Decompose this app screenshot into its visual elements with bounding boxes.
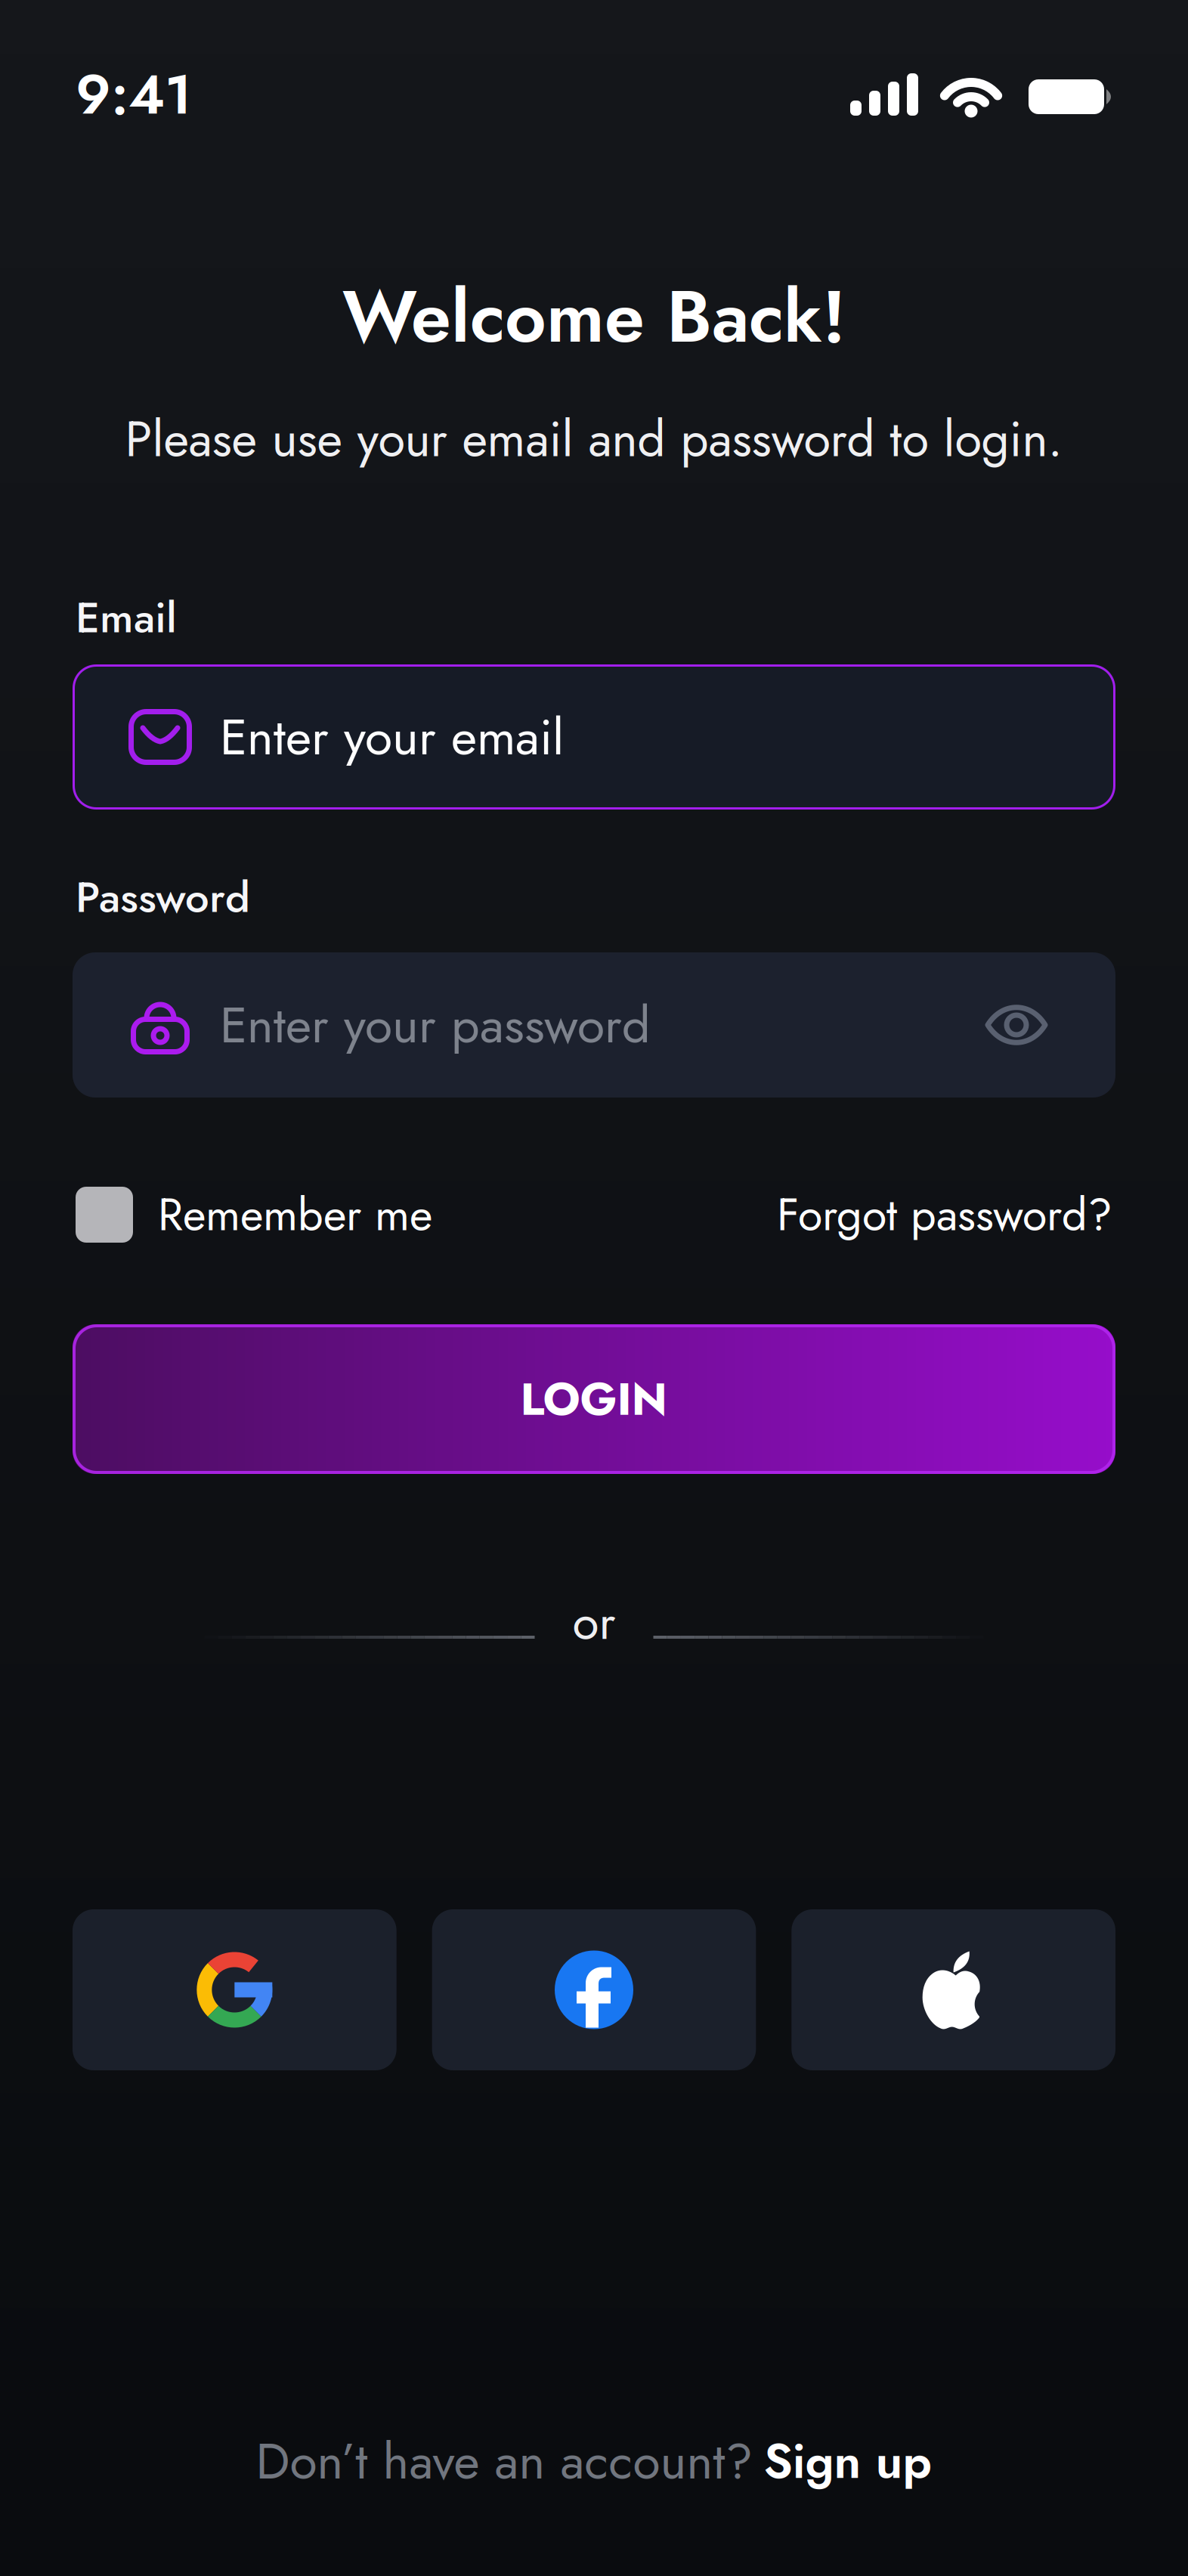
button[interactable]: Remember me [76,1182,432,1247]
staticText: Forgot password? [777,1182,1112,1247]
button[interactable]: LOGIN [73,1324,1115,1474]
staticText: Password [76,867,250,928]
staticText: Please use your email and password to lo… [125,404,1063,475]
button[interactable]: Enter your email [73,664,1115,810]
staticText: Welcome Back! [342,265,846,369]
staticText: Enter your password [220,989,651,1061]
staticText: Email [76,587,177,648]
button[interactable]: Forgot password? [777,1182,1112,1247]
button[interactable] [73,1909,397,2070]
staticText: Sign up [764,2426,932,2496]
staticText: Don’t have an account? [256,2425,753,2497]
staticText: 9:41 [76,55,192,134]
staticText: or [572,1587,616,1657]
button[interactable] [432,1909,756,2070]
staticText: LOGIN [520,1366,668,1432]
button[interactable]: Sign up [764,2426,932,2496]
staticText: Remember me [158,1182,432,1247]
button[interactable] [791,1909,1115,2070]
staticText: Enter your email [220,701,564,773]
button[interactable]: Enter your password [73,952,1115,1098]
